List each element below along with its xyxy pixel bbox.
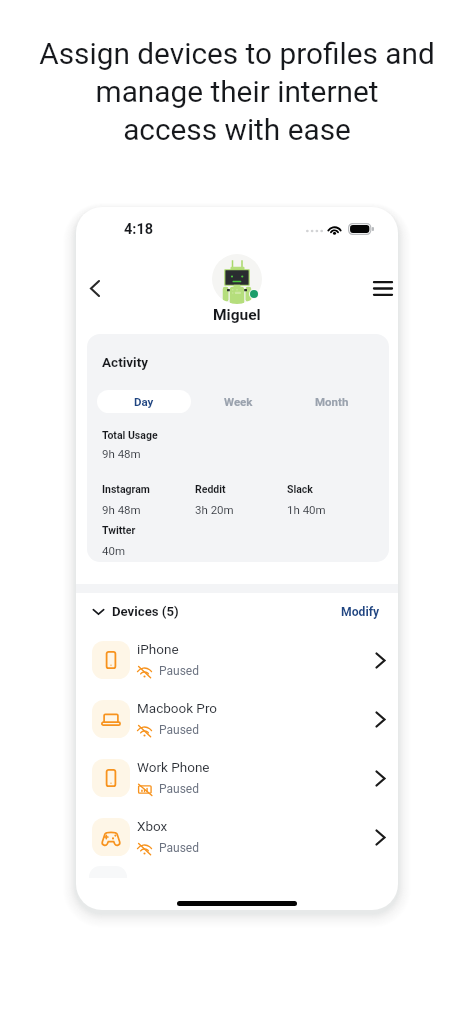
- staticText: 3h 20m: [195, 503, 234, 516]
- staticText: Week: [224, 395, 253, 408]
- button[interactable]: Work Phone: [76, 748, 398, 807]
- staticText: Paused: [159, 723, 199, 737]
- staticText: Assign devices to profiles and manage th…: [39, 36, 435, 148]
- staticText: iPhone: [137, 641, 179, 657]
- button[interactable]: Month: [285, 390, 379, 413]
- staticText: Instagram: [102, 483, 150, 495]
- staticText: Paused: [159, 782, 199, 796]
- staticText: 40m: [102, 544, 126, 557]
- staticText: Miguel: [213, 306, 261, 324]
- button[interactable]: Macbook Pro: [76, 689, 398, 748]
- staticText: Activity: [102, 354, 149, 370]
- button[interactable]: Profile avatar: [212, 254, 262, 304]
- button[interactable]: Menu: [365, 270, 398, 306]
- staticText: 9h 48m: [102, 503, 141, 516]
- staticText: Devices (5): [112, 604, 179, 619]
- staticText: 1h 40m: [287, 503, 326, 516]
- staticText: Xbox: [137, 818, 168, 834]
- button[interactable]: Modify: [341, 605, 380, 619]
- button[interactable]: Week: [191, 390, 285, 413]
- button[interactable]: Devices (5): [92, 604, 179, 619]
- staticText: Modify: [341, 605, 380, 619]
- staticText: Paused: [159, 841, 199, 855]
- button[interactable]: Back: [77, 270, 113, 306]
- staticText: 4:18: [124, 221, 154, 238]
- staticText: Day: [134, 395, 154, 408]
- staticText: Twitter: [102, 524, 136, 536]
- staticText: Total Usage: [102, 429, 158, 441]
- staticText: Reddit: [195, 483, 226, 495]
- staticText: 9h 48m: [102, 447, 141, 460]
- staticText: Slack: [287, 483, 313, 495]
- button[interactable]: iPhone: [76, 630, 398, 689]
- staticText: Work Phone: [137, 759, 210, 775]
- staticText: Paused: [159, 664, 199, 678]
- button[interactable]: Day: [97, 390, 191, 413]
- staticText: Month: [315, 395, 349, 408]
- button[interactable]: Xbox: [76, 807, 398, 866]
- staticText: Macbook Pro: [137, 700, 218, 716]
